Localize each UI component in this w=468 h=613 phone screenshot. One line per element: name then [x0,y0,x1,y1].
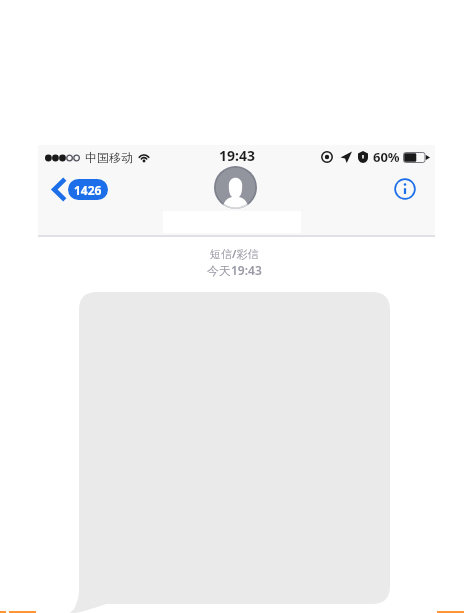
staticText: 短信/彩信 [210,246,259,261]
staticText: 中国移动 [85,150,133,165]
staticText: 60% [373,148,400,166]
staticText: 今天19:43 [207,262,262,278]
button[interactable]: Details [394,178,416,200]
button[interactable]: Contact avatar [214,166,257,209]
staticText: 19:43 [219,146,255,165]
staticText: 1426 [74,182,102,198]
button[interactable]: Back [50,176,108,203]
